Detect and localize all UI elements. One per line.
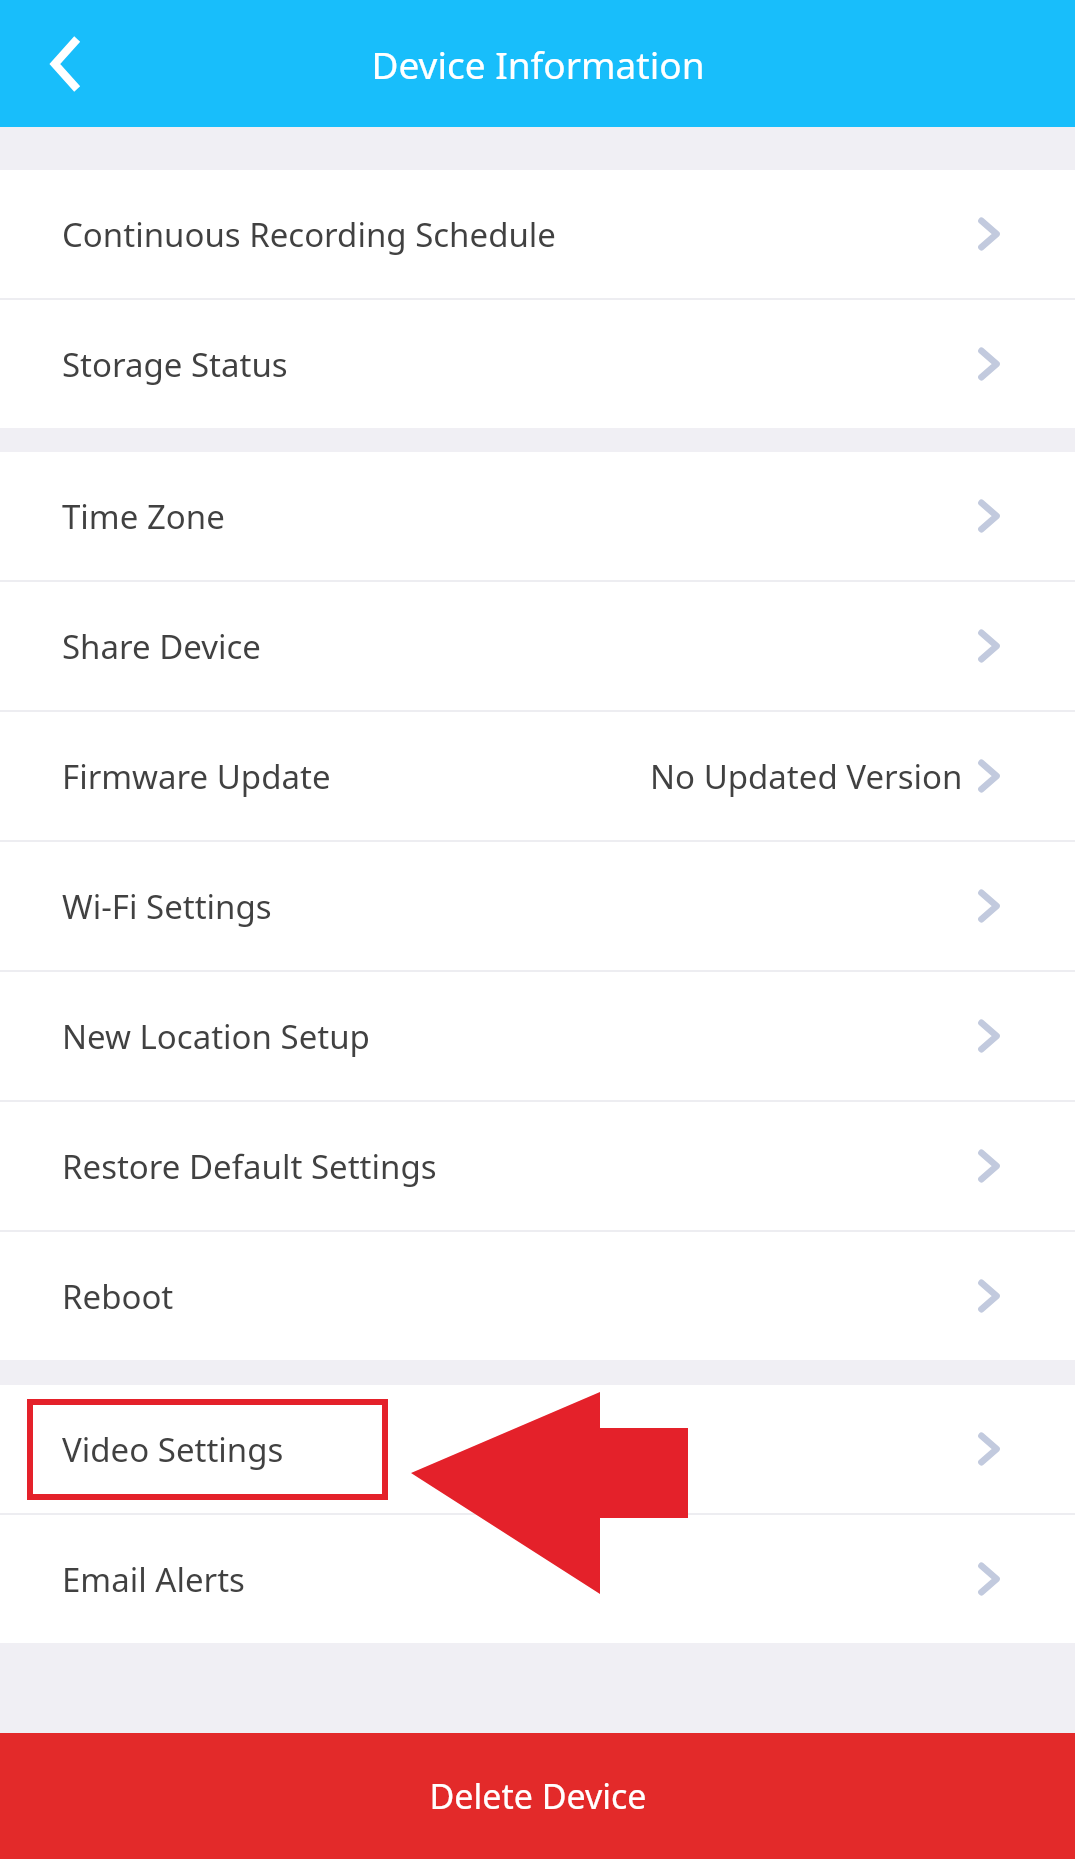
staticText: New Location Setup — [62, 1014, 370, 1059]
staticText: Video Settings — [62, 1427, 284, 1472]
button[interactable]: Firmware Update — [0, 712, 1075, 840]
button[interactable]: Time Zone — [0, 452, 1075, 580]
staticText: Firmware Update — [62, 754, 331, 799]
button[interactable]: Storage Status — [0, 300, 1075, 428]
button[interactable]: Delete Device — [0, 1733, 1075, 1859]
staticText: Reboot — [62, 1274, 174, 1319]
staticText: No Updated Version — [650, 754, 963, 799]
staticText: Delete Device — [429, 1773, 647, 1819]
button[interactable]: Video Settings — [0, 1385, 1075, 1513]
button[interactable]: Reboot — [0, 1232, 1075, 1360]
button[interactable]: Restore Default Settings — [0, 1102, 1075, 1230]
staticText: Restore Default Settings — [62, 1144, 437, 1189]
button[interactable]: New Location Setup — [0, 972, 1075, 1100]
staticText: Time Zone — [62, 494, 225, 539]
button[interactable]: Continuous Recording Schedule — [0, 170, 1075, 298]
staticText: Continuous Recording Schedule — [62, 212, 556, 257]
staticText: Wi-Fi Settings — [62, 884, 272, 929]
staticText: Share Device — [62, 624, 261, 669]
button[interactable]: Email Alerts — [0, 1515, 1075, 1643]
staticText: Device Information — [371, 39, 705, 89]
staticText: Storage Status — [62, 342, 288, 387]
button[interactable]: Back — [20, 19, 110, 109]
staticText: Email Alerts — [62, 1557, 245, 1602]
button[interactable]: Wi-Fi Settings — [0, 842, 1075, 970]
button[interactable]: Share Device — [0, 582, 1075, 710]
